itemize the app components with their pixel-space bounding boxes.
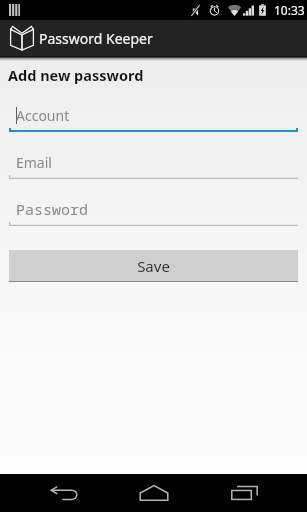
button[interactable]: Save	[9, 250, 298, 282]
staticText: Save	[137, 256, 170, 276]
staticText: 10:33	[274, 2, 305, 18]
button[interactable]: Home	[122, 474, 186, 512]
button[interactable]: Back	[29, 474, 93, 512]
staticText: Email	[16, 153, 52, 172]
staticText: Add new password	[8, 65, 144, 85]
button[interactable]: Recent apps	[214, 474, 278, 512]
staticText: Password Keeper	[39, 29, 153, 48]
staticText: Account	[16, 106, 70, 125]
staticText: Password	[16, 199, 89, 219]
